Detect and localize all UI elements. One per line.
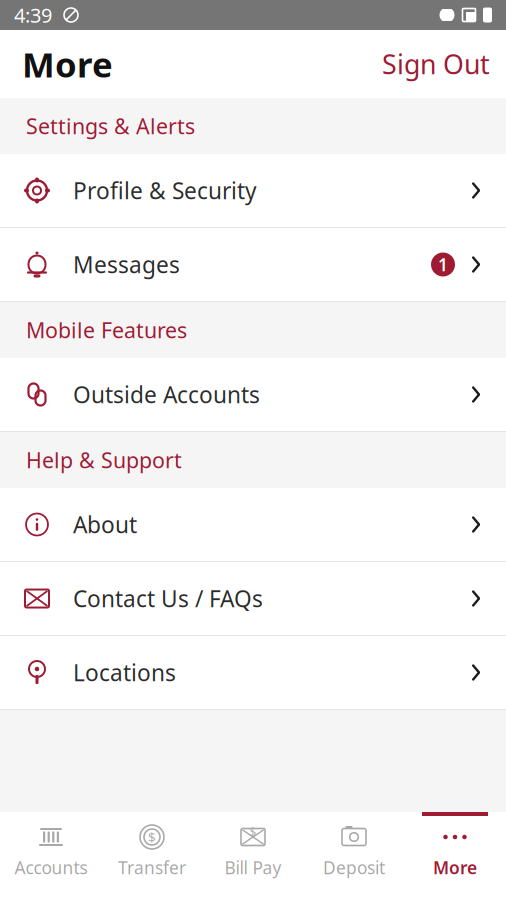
staticText: Bill Pay <box>224 856 281 879</box>
staticText: Settings & Alerts <box>26 112 195 140</box>
button[interactable]: Outside Accounts <box>0 358 506 432</box>
staticText: Accounts <box>14 856 87 879</box>
button[interactable]: About <box>0 488 506 562</box>
staticText: Locations <box>73 657 176 687</box>
button[interactable]: More <box>404 812 505 900</box>
button[interactable]: Profile & Security <box>0 154 506 228</box>
staticText: Deposit <box>323 856 385 879</box>
button[interactable]: Locations <box>0 636 506 710</box>
button[interactable]: Messages <box>0 228 506 302</box>
staticText: Mobile Features <box>26 316 187 344</box>
button[interactable]: $ <box>202 812 303 900</box>
button[interactable]: Accounts <box>0 812 101 900</box>
button[interactable]: Deposit <box>303 812 404 900</box>
staticText: $ <box>249 824 256 840</box>
staticText: Sign Out <box>382 46 490 82</box>
staticText: Help & Support <box>26 446 182 474</box>
button[interactable]: Sign Out <box>382 36 506 92</box>
staticText: Contact Us / FAQs <box>73 583 263 613</box>
staticText: More <box>22 41 113 87</box>
staticText: 1 <box>438 253 448 276</box>
staticText: Profile & Security <box>73 175 257 205</box>
button[interactable]: $ <box>101 812 202 900</box>
staticText: Messages <box>73 249 180 279</box>
staticText: About <box>73 509 137 539</box>
staticText: 4:39 <box>14 2 52 28</box>
staticText: More <box>433 856 477 879</box>
staticText: Outside Accounts <box>73 379 260 409</box>
button[interactable]: Contact Us / FAQs <box>0 562 506 636</box>
staticText: $ <box>148 828 156 846</box>
staticText: Transfer <box>118 856 186 879</box>
